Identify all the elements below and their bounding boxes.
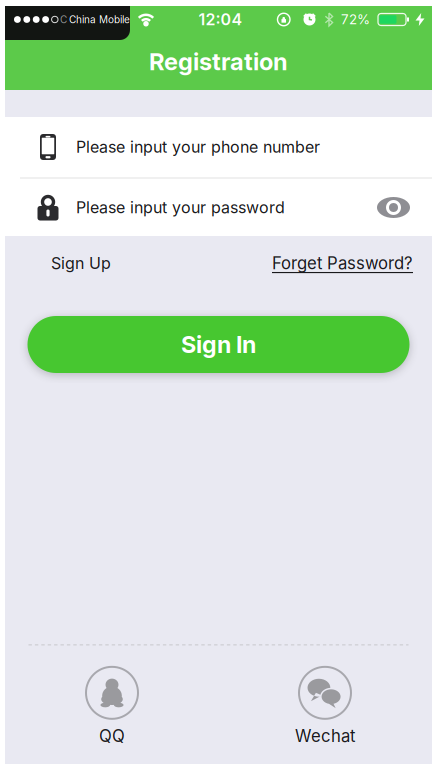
button[interactable]: Wechat	[275, 667, 375, 746]
button[interactable]: Forget Password?	[272, 253, 413, 273]
button[interactable]: Please input your password	[5, 179, 432, 236]
button[interactable]: Sign In	[27, 316, 409, 373]
button[interactable]: Sign Up	[51, 254, 111, 272]
staticText: Please input your phone number	[76, 138, 320, 156]
staticText: 72%	[341, 12, 370, 27]
staticText: Forget Password?	[272, 253, 413, 273]
staticText: C	[60, 13, 67, 26]
staticText: QQ	[99, 726, 125, 746]
staticText: China Mobile	[69, 13, 130, 26]
staticText: Registration	[149, 47, 288, 76]
staticText: Wechat	[295, 726, 355, 746]
staticText: 12:04	[198, 10, 242, 29]
staticText: Sign Up	[51, 254, 111, 272]
staticText: Please input your password	[76, 198, 285, 217]
staticText: Sign In	[181, 330, 256, 359]
button[interactable]: QQ	[62, 667, 162, 746]
button[interactable]: Please input your phone number	[5, 117, 432, 177]
